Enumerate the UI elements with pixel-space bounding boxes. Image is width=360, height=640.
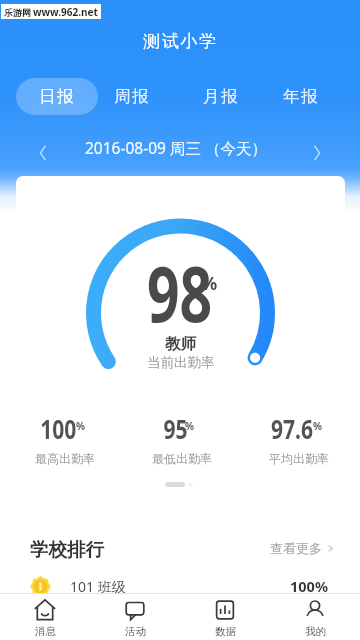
staticText: 最高出勤率 bbox=[35, 451, 95, 466]
button[interactable]: 月报 bbox=[185, 78, 257, 115]
button[interactable]: Next day bbox=[304, 140, 330, 166]
staticText: % bbox=[313, 419, 323, 433]
button[interactable]: 101 班级 bbox=[30, 574, 328, 598]
staticText: 数据 bbox=[215, 625, 236, 638]
staticText: 当前出勤率 bbox=[147, 354, 215, 371]
staticText: 学校排行 bbox=[30, 538, 104, 561]
button[interactable]: 我的 bbox=[270, 594, 360, 640]
staticText: 最低出勤率 bbox=[152, 451, 212, 466]
staticText: 100 bbox=[40, 410, 77, 447]
staticText: 97.6 bbox=[271, 410, 313, 447]
button[interactable]: 活动 bbox=[90, 594, 180, 640]
staticText: 查看更多 bbox=[270, 540, 322, 556]
staticText: % bbox=[76, 419, 86, 433]
staticText: 98 bbox=[147, 240, 213, 345]
staticText: 月报 bbox=[203, 86, 240, 107]
staticText: 100% bbox=[290, 576, 328, 596]
staticText: 乐游网 bbox=[4, 7, 31, 18]
staticText: 2016-08-09 周三 （今天） bbox=[85, 137, 267, 158]
button[interactable]: Previous day bbox=[30, 140, 56, 166]
staticText: 日报 bbox=[39, 86, 76, 107]
button[interactable]: 周报 bbox=[96, 78, 168, 115]
staticText: www.962.net bbox=[33, 5, 98, 19]
staticText: 活动 bbox=[125, 625, 146, 638]
staticText: 平均出勤率 bbox=[269, 451, 329, 466]
button[interactable]: 日报 bbox=[16, 78, 98, 115]
staticText: 测试小学 bbox=[143, 31, 218, 52]
staticText: 年报 bbox=[283, 86, 320, 107]
staticText: 周报 bbox=[114, 86, 151, 107]
staticText: 95 bbox=[163, 410, 188, 447]
staticText: % bbox=[201, 271, 218, 296]
staticText: 101 班级 bbox=[70, 577, 126, 596]
staticText: % bbox=[185, 419, 195, 433]
button[interactable]: 数据 bbox=[180, 594, 270, 640]
button[interactable]: 年报 bbox=[265, 78, 337, 115]
button[interactable]: 消息 bbox=[0, 594, 90, 640]
staticText: 我的 bbox=[305, 625, 326, 638]
button[interactable]: 查看更多 bbox=[270, 538, 335, 558]
staticText: 教师 bbox=[165, 334, 196, 354]
staticText: 消息 bbox=[35, 625, 56, 638]
